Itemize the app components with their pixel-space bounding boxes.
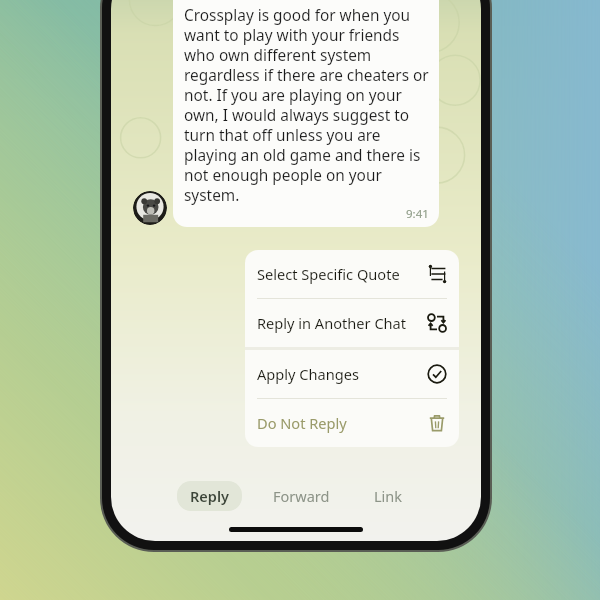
- staticText: Forward: [273, 486, 330, 506]
- staticText: Link: [374, 486, 403, 506]
- staticText: Do Not Reply: [257, 413, 347, 433]
- button[interactable]: Forward: [260, 481, 343, 511]
- staticText: Select Specific Quote: [257, 264, 400, 284]
- button[interactable]: Select Specific Quote: [245, 250, 459, 298]
- button[interactable]: Reply: [177, 481, 242, 511]
- staticText: Reply: [190, 486, 229, 506]
- button[interactable]: Rover: [173, 0, 439, 227]
- button[interactable]: Rover avatar: [133, 191, 167, 225]
- button[interactable]: Reply in Another Chat: [245, 299, 459, 347]
- button[interactable]: Do Not Reply: [245, 399, 459, 447]
- staticText: Crossplay is good for when you want to p…: [184, 5, 429, 206]
- button[interactable]: Link: [361, 481, 416, 511]
- button[interactable]: Apply Changes: [245, 350, 459, 398]
- staticText: Apply Changes: [257, 364, 359, 384]
- staticText: 9:41: [406, 206, 429, 222]
- staticText: Reply in Another Chat: [257, 313, 407, 333]
